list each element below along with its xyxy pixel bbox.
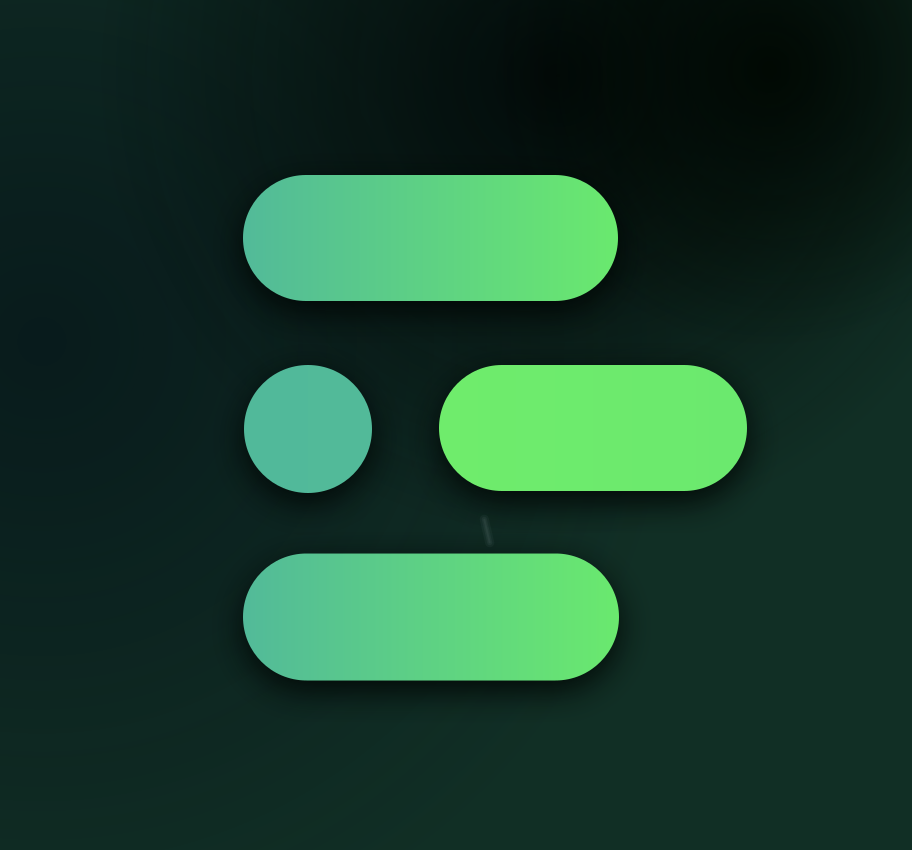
button[interactable]: Continue: [0, 0, 912, 850]
